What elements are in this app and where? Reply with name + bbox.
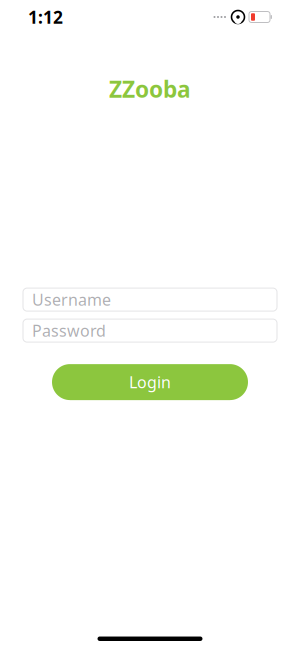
staticText: Password [32, 320, 106, 341]
staticText: Login [129, 371, 171, 393]
staticText: 1:12 [28, 5, 63, 28]
button[interactable]: Username [0, 288, 300, 311]
button[interactable]: Login [52, 364, 248, 400]
staticText: Username [32, 289, 111, 310]
staticText: ZZooba [109, 74, 191, 104]
button[interactable]: Password [0, 319, 300, 342]
